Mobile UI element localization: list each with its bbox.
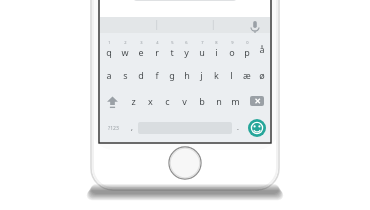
staticText: m [231, 95, 240, 107]
button[interactable]: c [159, 88, 176, 114]
button[interactable]: , [126, 114, 138, 142]
button[interactable]: b [193, 88, 210, 114]
button[interactable]: f [149, 62, 164, 88]
button[interactable]: l [224, 62, 239, 88]
button[interactable]: ?123 [100, 114, 126, 142]
button[interactable]: 3 [133, 35, 149, 62]
staticText: x [148, 95, 153, 107]
staticText: å [259, 43, 265, 55]
staticText: æ [243, 69, 251, 81]
staticText: w [121, 46, 129, 58]
staticText: 9 [231, 40, 234, 45]
button[interactable]: Emoji [244, 114, 270, 142]
button[interactable]: d [133, 62, 149, 88]
button[interactable]: 0 [239, 35, 254, 62]
button[interactable]: m [227, 88, 244, 114]
button[interactable]: 1 [101, 35, 117, 62]
button[interactable]: Shift [100, 88, 124, 114]
staticText: g [169, 69, 175, 81]
staticText: e [138, 46, 144, 58]
button[interactable]: k [209, 62, 224, 88]
staticText: r [155, 46, 159, 58]
staticText: 5 [171, 40, 174, 45]
staticText: v [182, 95, 187, 107]
button[interactable]: 2 [117, 35, 133, 62]
staticText: 3 [140, 40, 143, 45]
staticText: l [230, 69, 233, 81]
staticText: p [244, 46, 250, 58]
button[interactable]: 5 [164, 35, 179, 62]
staticText: n [216, 95, 222, 107]
staticText: h [184, 69, 190, 81]
button[interactable]: a [101, 62, 117, 88]
staticText: 8 [215, 40, 218, 45]
button[interactable]: Backspace [244, 88, 270, 114]
button[interactable]: n [210, 88, 227, 114]
staticText: 1 [108, 40, 111, 45]
staticText: f [155, 69, 159, 81]
staticText: q [106, 46, 112, 58]
staticText: , [131, 123, 133, 133]
button[interactable]: x [142, 88, 159, 114]
button[interactable]: g [164, 62, 179, 88]
staticText: a [106, 69, 112, 81]
staticText: 7 [201, 40, 204, 45]
staticText: 0 [246, 40, 249, 45]
button[interactable]: 7 [194, 35, 209, 62]
staticText: ?123 [108, 125, 119, 132]
staticText: b [199, 95, 205, 107]
button[interactable]: æ [239, 62, 254, 88]
button[interactable]: z [124, 88, 142, 114]
button[interactable]: h [179, 62, 194, 88]
staticText: u [199, 46, 205, 58]
staticText: j [200, 69, 203, 81]
button[interactable]: 4 [149, 35, 164, 62]
staticText: y [184, 46, 189, 58]
staticText: c [165, 95, 170, 107]
staticText: s [123, 69, 128, 81]
button[interactable]: v [176, 88, 193, 114]
button[interactable]: 6 [179, 35, 194, 62]
button[interactable]: Voice input [248, 18, 262, 32]
staticText: o [229, 46, 235, 58]
staticText: ø [259, 69, 265, 81]
button[interactable]: 8 [209, 35, 224, 62]
staticText: . [237, 123, 239, 133]
staticText: i [215, 46, 218, 58]
staticText: t [170, 46, 174, 58]
button[interactable]: ø [254, 62, 269, 88]
button[interactable]: . [232, 114, 244, 142]
staticText: 6 [185, 40, 188, 45]
staticText: 2 [124, 40, 127, 45]
staticText: k [214, 69, 219, 81]
staticText: 4 [156, 40, 159, 45]
button[interactable]: s [117, 62, 133, 88]
button[interactable]: 9 [224, 35, 239, 62]
staticText: d [138, 69, 144, 81]
button[interactable]: å [254, 35, 269, 62]
staticText: z [131, 95, 136, 107]
button[interactable]: j [194, 62, 209, 88]
